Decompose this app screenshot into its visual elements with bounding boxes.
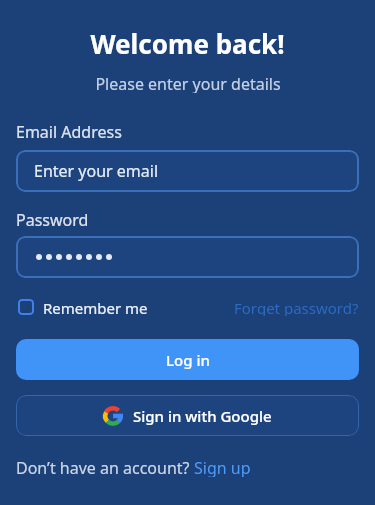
staticText: Welcome back! <box>90 26 285 58</box>
button[interactable]: Sign up <box>194 457 251 477</box>
button[interactable] <box>16 236 359 278</box>
staticText: Remember me <box>43 298 148 316</box>
staticText: Email Address <box>16 121 122 139</box>
staticText: Log in <box>166 350 210 370</box>
button[interactable]: Forget password? <box>234 298 359 316</box>
staticText: Password <box>16 209 89 227</box>
staticText: Please enter your details <box>95 73 281 93</box>
button[interactable]: Sign in with Google <box>16 395 359 436</box>
staticText: Forget password? <box>234 298 359 316</box>
button[interactable]: Remember me <box>16 298 148 316</box>
button[interactable]: Enter your email <box>16 150 359 192</box>
staticText: Don’t have an account? <box>16 457 194 477</box>
staticText: Enter your email <box>34 160 159 182</box>
staticText: Sign in with Google <box>133 406 272 426</box>
button[interactable]: Log in <box>16 339 359 380</box>
staticText: Sign up <box>194 457 251 477</box>
